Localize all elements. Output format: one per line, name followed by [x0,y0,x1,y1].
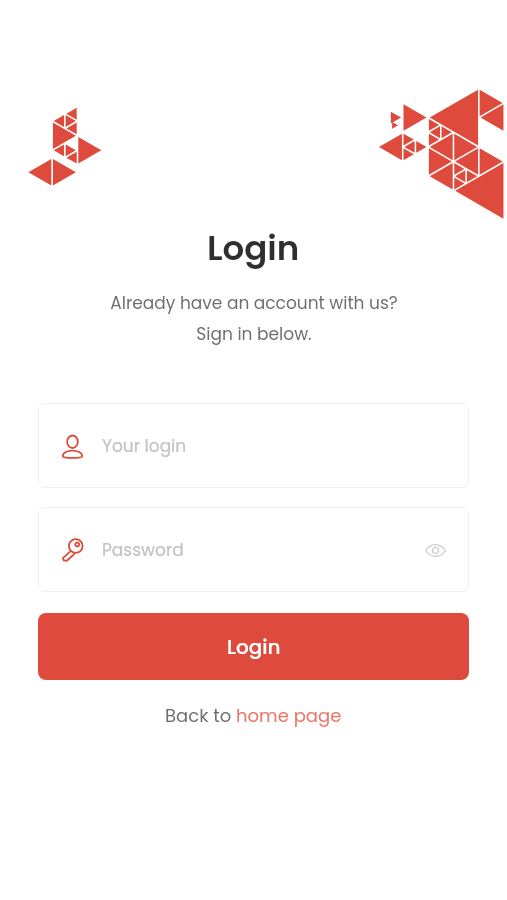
staticText: Login [227,633,281,661]
button[interactable]: Password [38,507,469,592]
button[interactable]: Show password [419,534,451,566]
staticText: Login [207,224,300,272]
button[interactable]: Login [38,613,469,680]
staticText: Back to home page [165,703,342,728]
staticText: Your login [102,434,187,458]
staticText: Password [102,538,184,562]
staticText: Already have an account with us? Sign in… [110,291,398,346]
button[interactable]: Back to home page [161,701,346,730]
button[interactable]: Your login [38,403,469,488]
